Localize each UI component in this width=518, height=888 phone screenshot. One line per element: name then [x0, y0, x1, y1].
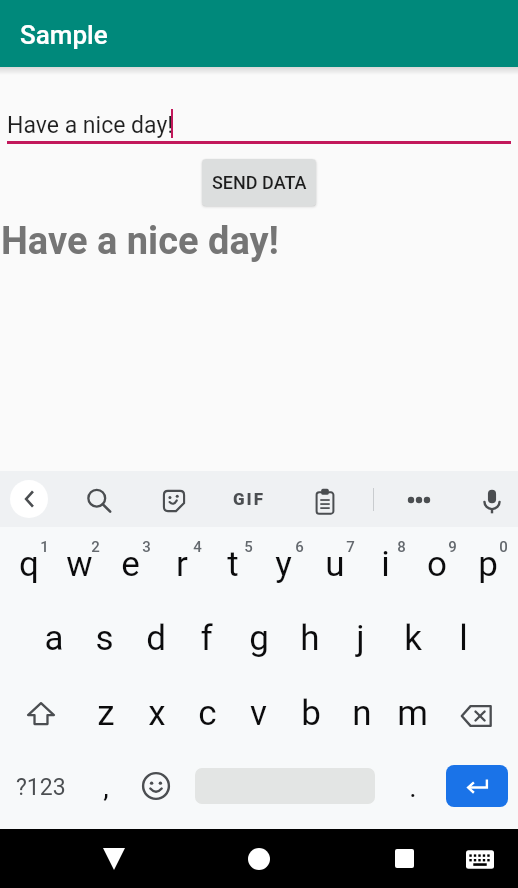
staticText: q [19, 544, 39, 585]
button[interactable]: l [438, 613, 489, 663]
button[interactable]: i [360, 539, 411, 589]
staticText: v [250, 693, 267, 734]
staticText: c [198, 693, 217, 734]
button[interactable]: v [233, 688, 284, 738]
staticText: Sample [20, 20, 108, 50]
staticText: h [300, 618, 320, 659]
button[interactable]: . [387, 762, 438, 812]
button[interactable]: q [3, 539, 54, 589]
button[interactable]: Enter [446, 765, 508, 807]
staticText: o [427, 544, 447, 585]
staticText: 2 [91, 538, 100, 556]
staticText: Have a nice day! [1, 219, 279, 264]
button[interactable]: Back [83, 829, 145, 888]
button[interactable]: p [462, 539, 513, 589]
staticText: r [176, 544, 188, 585]
button[interactable]: Back [10, 480, 48, 518]
staticText: GIF [233, 489, 266, 509]
button[interactable]: Clipboard [301, 477, 349, 525]
staticText: ?123 [16, 774, 66, 801]
button[interactable]: o [411, 539, 462, 589]
staticText: e [121, 544, 140, 585]
button[interactable]: h [284, 613, 335, 663]
button[interactable]: t [207, 539, 258, 589]
staticText: 3 [142, 538, 151, 556]
button[interactable]: More options [395, 477, 443, 525]
button[interactable]: ?123 [6, 759, 76, 815]
staticText: y [275, 544, 292, 585]
staticText: 0 [499, 538, 508, 556]
button[interactable]: Stickers [150, 477, 198, 525]
button[interactable]: j [335, 613, 386, 663]
staticText: s [95, 618, 114, 659]
staticText: d [146, 618, 166, 659]
button[interactable]: Switch keyboard [450, 829, 510, 888]
staticText: 1 [40, 538, 49, 556]
staticText: 6 [295, 538, 304, 556]
button[interactable]: e [105, 539, 156, 589]
staticText: f [200, 618, 213, 659]
button[interactable]: r [156, 539, 207, 589]
staticText: 5 [244, 538, 253, 556]
button[interactable]: k [387, 613, 438, 663]
staticText: j [356, 618, 365, 659]
staticText: w [66, 544, 93, 585]
staticText: m [397, 693, 428, 734]
staticText: l [459, 618, 468, 659]
button[interactable]: z [80, 688, 131, 738]
staticText: . [409, 771, 417, 804]
button[interactable]: m [387, 688, 438, 738]
staticText: u [325, 544, 345, 585]
staticText: t [227, 544, 239, 585]
button[interactable]: x [131, 688, 182, 738]
staticText: 4 [193, 538, 202, 556]
button[interactable]: Recents [373, 829, 435, 888]
staticText: 8 [397, 538, 406, 556]
button[interactable]: y [258, 539, 309, 589]
staticText: g [249, 618, 269, 659]
button[interactable]: g [233, 613, 284, 663]
staticText: a [44, 618, 64, 659]
button[interactable]: SEND DATA [202, 159, 316, 206]
button[interactable]: Search [75, 477, 123, 525]
staticText: 7 [346, 538, 355, 556]
staticText: , [103, 771, 109, 804]
staticText: SEND DATA [212, 172, 307, 193]
staticText: 9 [448, 538, 457, 556]
button[interactable]: w [54, 539, 105, 589]
button[interactable]: Backspace [452, 694, 502, 738]
button[interactable]: Home [228, 829, 290, 888]
button[interactable]: GIF [225, 479, 273, 519]
staticText: k [404, 618, 422, 659]
button[interactable]: s [79, 613, 130, 663]
button[interactable]: , [80, 762, 131, 812]
button[interactable]: n [336, 688, 387, 738]
staticText: Have a nice day! [7, 112, 174, 139]
button[interactable]: Shift [16, 692, 66, 736]
button[interactable]: Voice input [468, 477, 516, 525]
button[interactable]: a [28, 613, 79, 663]
button[interactable]: Emoji [131, 764, 181, 808]
button[interactable]: u [309, 539, 360, 589]
button[interactable]: c [182, 688, 233, 738]
button[interactable]: d [130, 613, 181, 663]
staticText: z [97, 693, 115, 734]
button[interactable]: f [181, 613, 232, 663]
staticText: i [381, 544, 390, 585]
staticText: p [478, 544, 498, 585]
staticText: x [148, 693, 166, 734]
staticText: b [301, 693, 321, 734]
staticText: n [352, 693, 372, 734]
button[interactable]: b [285, 688, 336, 738]
